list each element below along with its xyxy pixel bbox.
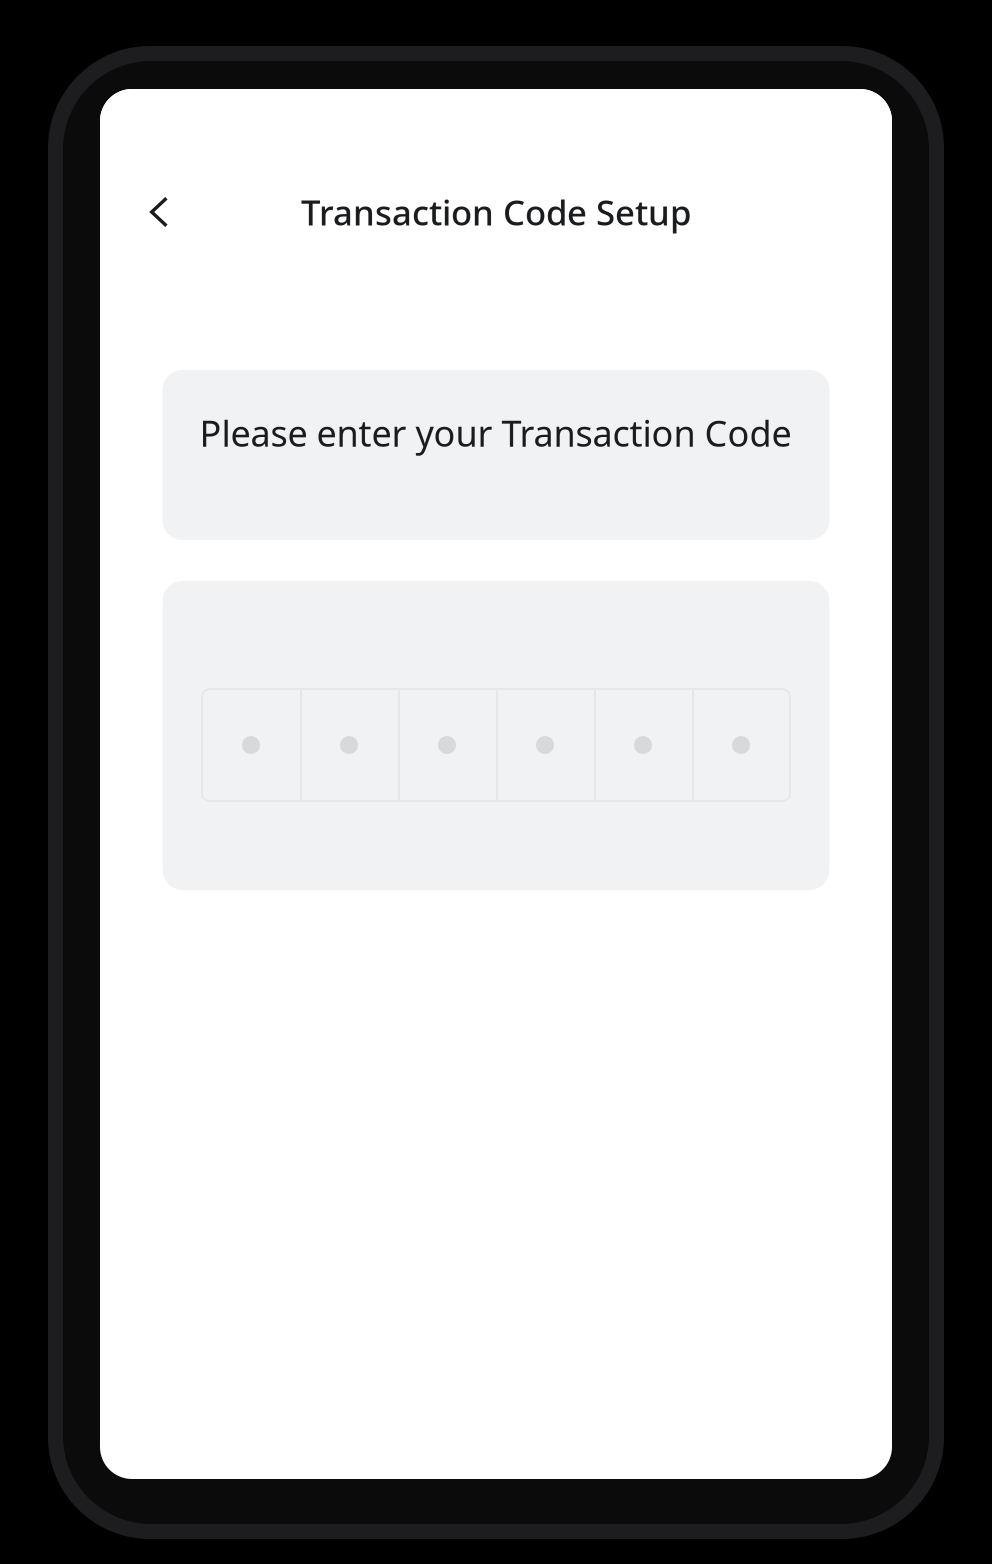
staticText: Transaction Code Setup xyxy=(301,189,691,235)
button[interactable]: Back xyxy=(128,181,190,243)
staticText: Please enter your Transaction Code xyxy=(199,409,791,457)
button[interactable]: Transaction code entry xyxy=(202,689,790,801)
